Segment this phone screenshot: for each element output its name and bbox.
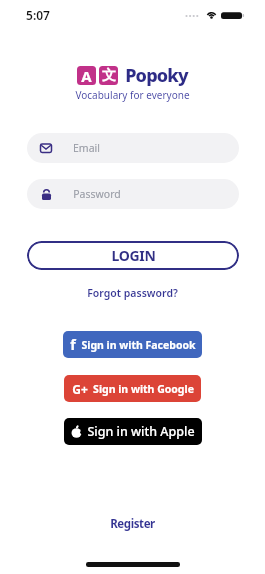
button[interactable]: f [63, 331, 202, 358]
button[interactable]: Forgot password? [87, 285, 178, 300]
staticText: G+ [72, 381, 88, 397]
staticText: Sign in with Google [93, 382, 194, 396]
button[interactable]: LOGIN [27, 241, 239, 270]
staticText: Sign in with Apple [87, 423, 195, 440]
staticText: Email [73, 141, 100, 155]
staticText: 文 [102, 67, 116, 85]
staticText: Popoky [125, 63, 188, 88]
staticText: f [70, 335, 76, 354]
staticText: Register [110, 516, 155, 532]
button[interactable]: Register [110, 515, 155, 532]
staticText: 5:07 [26, 7, 50, 21]
button[interactable]: G+ [64, 375, 201, 402]
staticText: Vocabulary for everyone [75, 88, 190, 102]
staticText: LOGIN [111, 246, 156, 265]
button[interactable]: Password [27, 179, 239, 209]
staticText: Password [73, 187, 121, 201]
button[interactable]: Email [27, 133, 239, 163]
staticText: Sign in with Facebook [81, 338, 196, 352]
button[interactable]: Sign in with Apple [64, 418, 202, 445]
staticText: Forgot password? [87, 286, 178, 300]
staticText: A [81, 66, 92, 85]
